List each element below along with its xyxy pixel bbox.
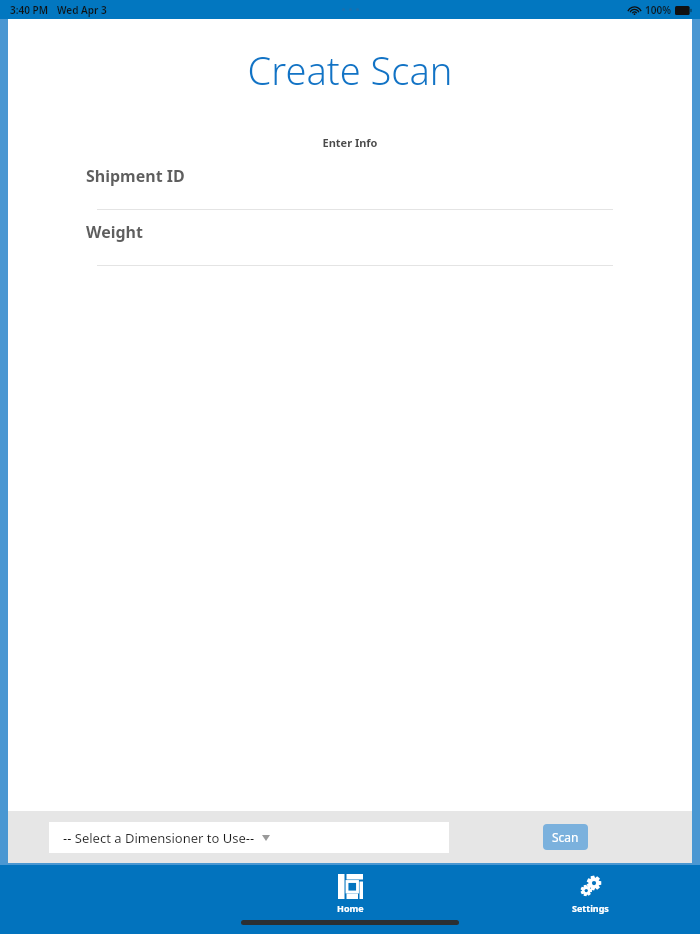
staticText: Settings [572, 902, 609, 914]
button[interactable]: Scan [543, 824, 588, 850]
staticText: 100% [645, 3, 671, 17]
button[interactable]: Weight [8, 221, 692, 266]
staticText: -- Select a Dimensioner to Use-- [63, 829, 255, 847]
button[interactable]: Settings [558, 871, 622, 917]
staticText: Scan [552, 829, 579, 845]
staticText: Create Scan [8, 44, 692, 96]
other: Settings [578, 874, 603, 899]
button[interactable]: -- Select a Dimensioner to Use-- [49, 822, 449, 853]
staticText: Weight [86, 221, 143, 243]
other: Home [338, 874, 363, 899]
staticText: 3:40 PM [10, 3, 48, 17]
staticText: Shipment ID [86, 165, 185, 187]
staticText: Enter Info [8, 135, 692, 150]
button[interactable]: Home [318, 871, 382, 917]
staticText: Wed Apr 3 [57, 3, 107, 17]
button[interactable]: Shipment ID [8, 165, 692, 210]
staticText: Home [337, 902, 364, 914]
